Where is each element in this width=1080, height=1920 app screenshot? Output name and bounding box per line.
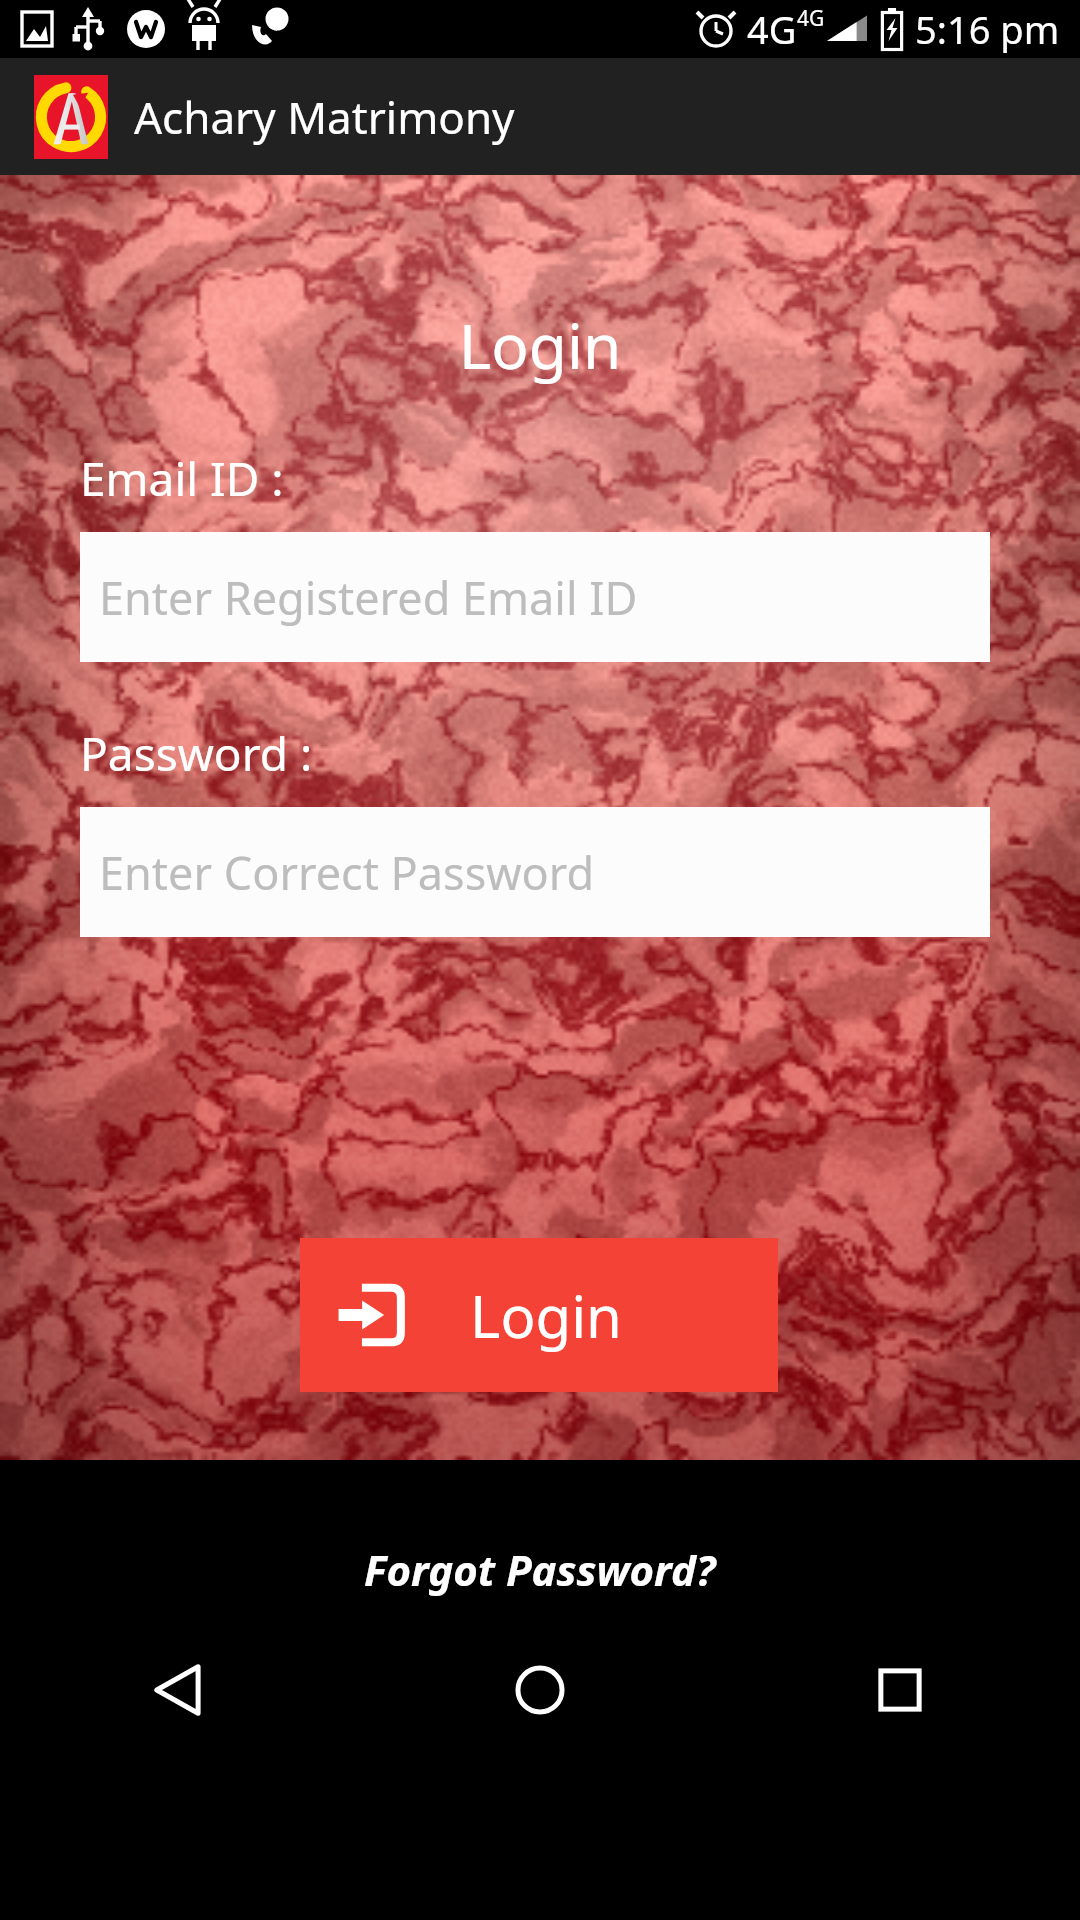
button[interactable]: Back — [0, 1460, 360, 1920]
staticText: 5:16 pm — [915, 3, 1060, 55]
button[interactable]: Forgot Password? — [348, 1533, 732, 1606]
staticText: Login — [470, 1276, 622, 1355]
staticText: 4G — [747, 3, 797, 55]
staticText: Enter Registered Email ID — [99, 567, 638, 628]
staticText: Enter Correct Password — [99, 842, 595, 903]
staticText: Email ID : — [80, 447, 284, 510]
button[interactable]: Password — [80, 807, 990, 937]
button[interactable]: Recent apps — [720, 1460, 1080, 1920]
button[interactable]: Email ID — [80, 532, 990, 662]
staticText: Achary Matrimony — [134, 87, 515, 147]
button[interactable]: Home — [360, 1460, 720, 1920]
staticText: Forgot Password? — [364, 1541, 716, 1598]
staticText: Password : — [80, 722, 313, 785]
button[interactable]: Login — [300, 1238, 778, 1392]
staticText: 4G — [797, 4, 825, 33]
staticText: Login — [0, 303, 1080, 387]
